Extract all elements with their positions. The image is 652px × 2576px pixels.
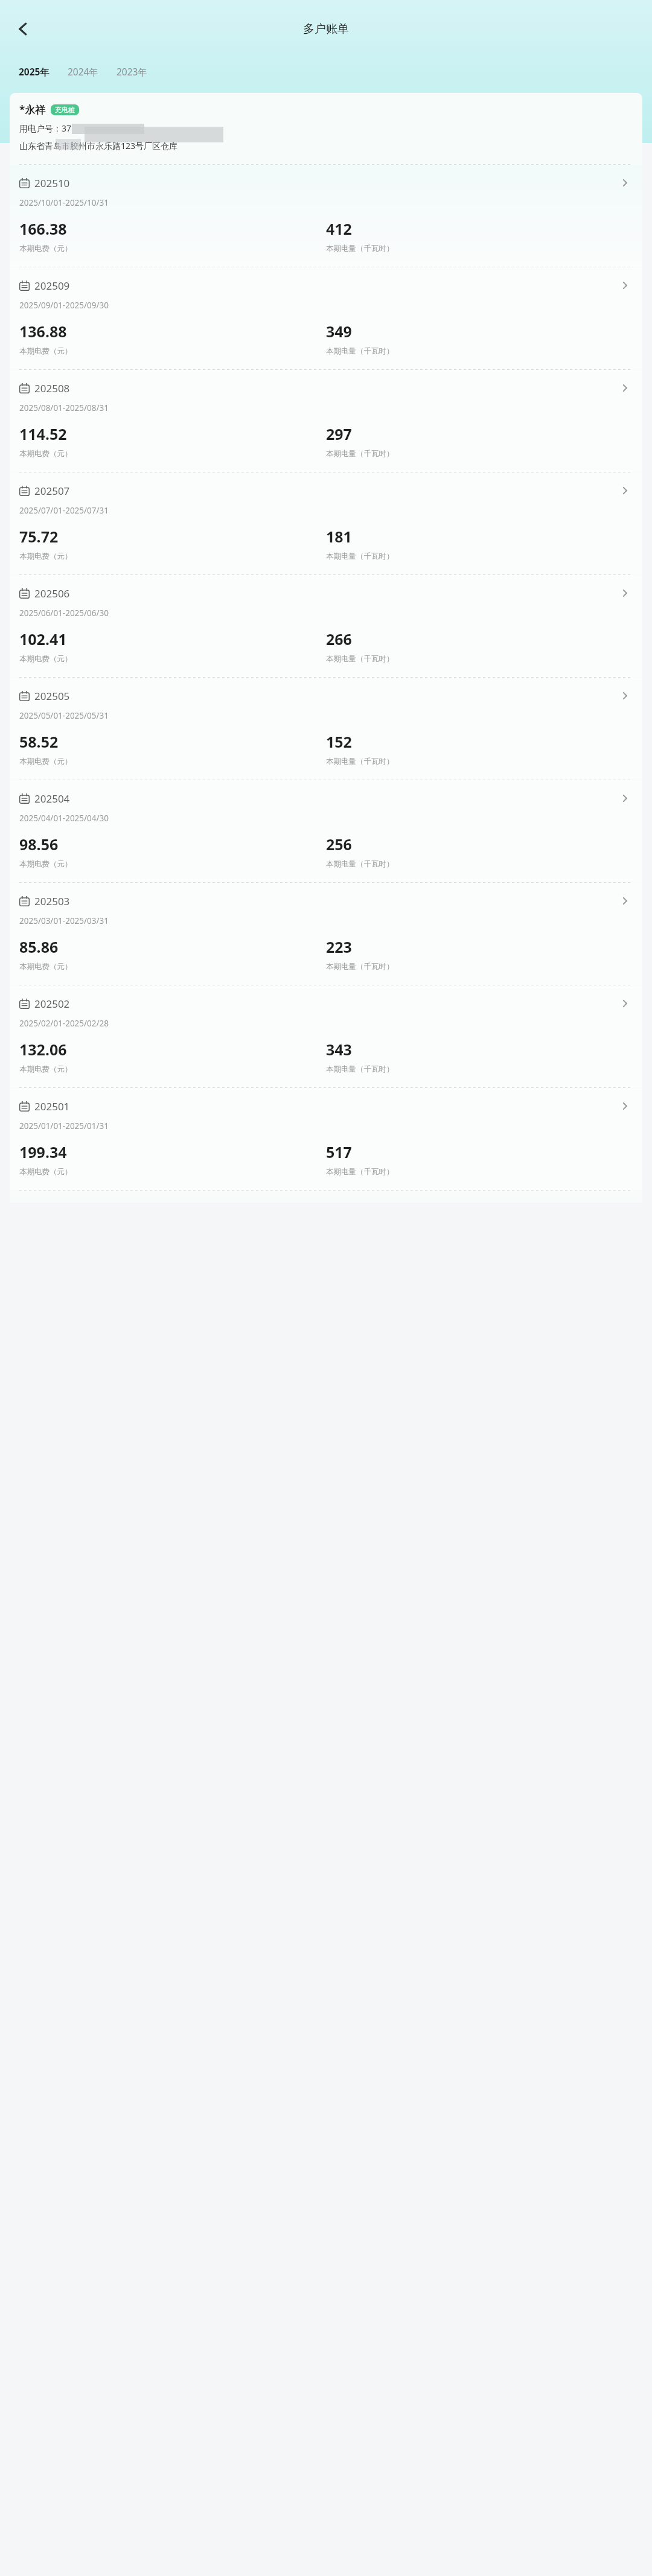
button[interactable]: 202503 (10, 883, 642, 985)
staticText: 202504 (34, 792, 70, 806)
staticText: 本期电量（千瓦时） (326, 1064, 394, 1074)
staticText: 85.86 (19, 937, 59, 957)
staticText: 本期电量（千瓦时） (326, 244, 394, 253)
staticText: 本期电费（元） (19, 1064, 72, 1074)
staticText: 2025/09/01-2025/09/30 (19, 300, 109, 311)
button[interactable]: 202506 (10, 575, 642, 677)
staticText: 用电户号：37 (19, 122, 72, 134)
staticText: 2025/08/01-2025/08/31 (19, 402, 109, 413)
staticText: 本期电费（元） (19, 654, 72, 664)
staticText: 2025/03/01-2025/03/31 (19, 915, 109, 926)
staticText: 102.41 (19, 629, 67, 649)
staticText: 114.52 (19, 424, 67, 444)
staticText: 2025/04/01-2025/04/30 (19, 813, 109, 824)
staticText: 本期电量（千瓦时） (326, 859, 394, 869)
staticText: 58.52 (19, 731, 59, 752)
button[interactable]: View bill detail (617, 1098, 633, 1114)
staticText: 本期电费（元） (19, 757, 72, 766)
staticText: 202501 (34, 1099, 70, 1113)
staticText: 本期电费（元） (19, 244, 72, 253)
staticText: 202508 (34, 381, 70, 395)
button[interactable]: View bill detail (617, 996, 633, 1011)
button[interactable]: View bill detail (617, 380, 633, 396)
staticText: 136.88 (19, 321, 67, 342)
staticText: 本期电费（元） (19, 1167, 72, 1177)
button[interactable]: 202510 (10, 165, 642, 267)
button[interactable]: View bill detail (617, 893, 633, 909)
button[interactable]: 202501 (10, 1088, 642, 1190)
staticText: 266 (326, 629, 352, 649)
staticText: 本期电费（元） (19, 346, 72, 356)
button[interactable]: 202507 (10, 472, 642, 574)
staticText: 2024年 (68, 65, 98, 78)
staticText: 本期电费（元） (19, 962, 72, 972)
staticText: 2025/01/01-2025/01/31 (19, 1121, 109, 1131)
button[interactable]: Back (6, 12, 40, 46)
staticText: 2025年 (19, 65, 50, 78)
staticText: 2025/10/01-2025/10/31 (19, 197, 109, 208)
staticText: 202503 (34, 894, 70, 908)
staticText: 本期电量（千瓦时） (326, 346, 394, 356)
button[interactable]: 2023年 (115, 63, 149, 80)
staticText: 517 (326, 1142, 352, 1162)
staticText: 2025/02/01-2025/02/28 (19, 1018, 109, 1029)
button[interactable]: 202509 (10, 267, 642, 369)
staticText: 256 (326, 834, 352, 854)
staticText: 充电桩 (55, 106, 75, 114)
staticText: 202502 (34, 997, 70, 1011)
staticText: 202507 (34, 484, 70, 498)
button[interactable]: 2024年 (66, 63, 100, 80)
staticText: 本期电费（元） (19, 859, 72, 869)
button[interactable]: View bill detail (617, 688, 633, 704)
staticText: 297 (326, 424, 352, 444)
staticText: 349 (326, 321, 352, 342)
staticText: 本期电量（千瓦时） (326, 1167, 394, 1177)
button[interactable]: View bill detail (617, 790, 633, 806)
staticText: 199.34 (19, 1142, 67, 1162)
staticText: 多户账单 (303, 22, 349, 36)
staticText: 本期电量（千瓦时） (326, 552, 394, 561)
staticText: 152 (326, 731, 352, 752)
staticText: 181 (326, 526, 352, 547)
staticText: 本期电量（千瓦时） (326, 654, 394, 664)
staticText: 2023年 (117, 65, 147, 78)
button[interactable]: View bill detail (617, 175, 633, 191)
staticText: 本期电量（千瓦时） (326, 757, 394, 766)
staticText: 本期电费（元） (19, 449, 72, 459)
button[interactable]: 202502 (10, 985, 642, 1087)
staticText: 202510 (34, 176, 70, 190)
staticText: 202506 (34, 587, 70, 600)
button[interactable]: 202508 (10, 370, 642, 472)
staticText: 2025/06/01-2025/06/30 (19, 608, 109, 619)
staticText: 412 (326, 218, 352, 239)
staticText: 本期电费（元） (19, 552, 72, 561)
button[interactable]: 202505 (10, 678, 642, 780)
staticText: 山东省青岛市胶州市永乐路123号厂区仓库 (19, 140, 178, 151)
staticText: *永祥 (19, 103, 46, 116)
staticText: 75.72 (19, 526, 59, 547)
staticText: 166.38 (19, 218, 67, 239)
staticText: 本期电量（千瓦时） (326, 962, 394, 972)
staticText: 223 (326, 937, 352, 957)
staticText: 202505 (34, 689, 70, 703)
button[interactable]: View bill detail (617, 585, 633, 601)
button[interactable]: View bill detail (617, 278, 633, 293)
button[interactable]: 2025年 (18, 63, 51, 80)
staticText: 2025/07/01-2025/07/31 (19, 505, 109, 516)
staticText: 132.06 (19, 1039, 67, 1060)
staticText: 2025/05/01-2025/05/31 (19, 710, 109, 721)
button[interactable]: View bill detail (617, 483, 633, 498)
button[interactable]: 202504 (10, 780, 642, 882)
staticText: 343 (326, 1039, 352, 1060)
staticText: 98.56 (19, 834, 59, 854)
staticText: 202509 (34, 279, 70, 293)
staticText: 本期电量（千瓦时） (326, 449, 394, 459)
